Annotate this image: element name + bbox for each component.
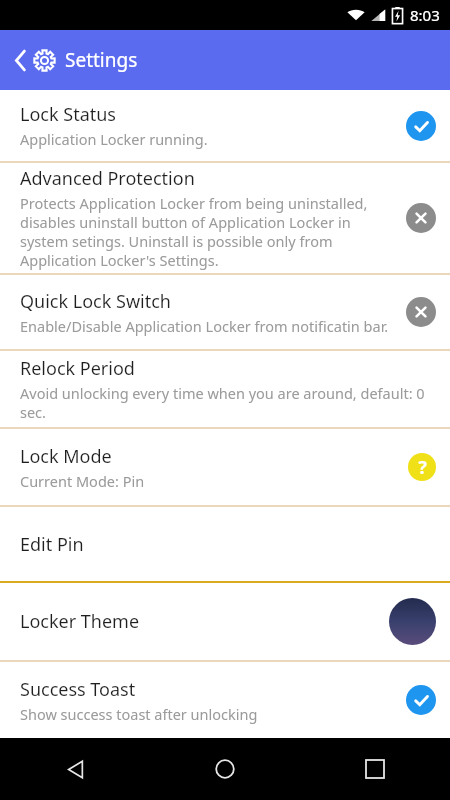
staticText: Advanced Protection [20,166,195,191]
button[interactable]: Disabled [406,297,436,327]
staticText: Edit Pin [20,532,84,557]
button[interactable]: Home [150,738,300,800]
button[interactable]: Advanced Protection [0,163,450,273]
staticText: ? [418,455,427,480]
button[interactable]: Disabled [406,203,436,233]
staticText: Lock Status [20,102,116,127]
button[interactable]: Lock Status [0,90,450,161]
staticText: Relock Period [20,356,135,381]
staticText: Lock Mode [20,444,112,469]
staticText: Application Locker running. [20,129,208,149]
button[interactable]: Quick Lock Switch [0,275,450,349]
staticText: Success Toast [20,677,136,702]
staticText: 8:03 [410,5,440,25]
staticText: Locker Theme [20,609,140,634]
staticText: Show success toast after unlocking [20,704,258,724]
button[interactable]: Back [3,43,37,77]
staticText: Current Mode: Pin [20,471,145,491]
button[interactable]: Locker theme colour [389,598,436,645]
button[interactable]: Lock Mode [0,429,450,505]
button[interactable]: Enabled [406,111,436,141]
button[interactable]: Success Toast [0,662,450,738]
button[interactable]: Enabled [406,685,436,715]
button[interactable]: Locker Theme [0,583,450,660]
button[interactable]: Back [0,738,150,800]
staticText: Quick Lock Switch [20,289,171,314]
staticText: Enable/Disable Application Locker from n… [20,316,389,336]
button[interactable]: Help [408,453,436,481]
button[interactable]: Relock Period [0,351,450,427]
staticText: Protects Application Locker from being u… [20,193,396,270]
button[interactable]: Edit Pin [0,507,450,581]
staticText: Avoid unlocking every time when you are … [20,383,436,422]
staticText: Settings [65,47,138,73]
button[interactable]: Recent apps [300,738,450,800]
